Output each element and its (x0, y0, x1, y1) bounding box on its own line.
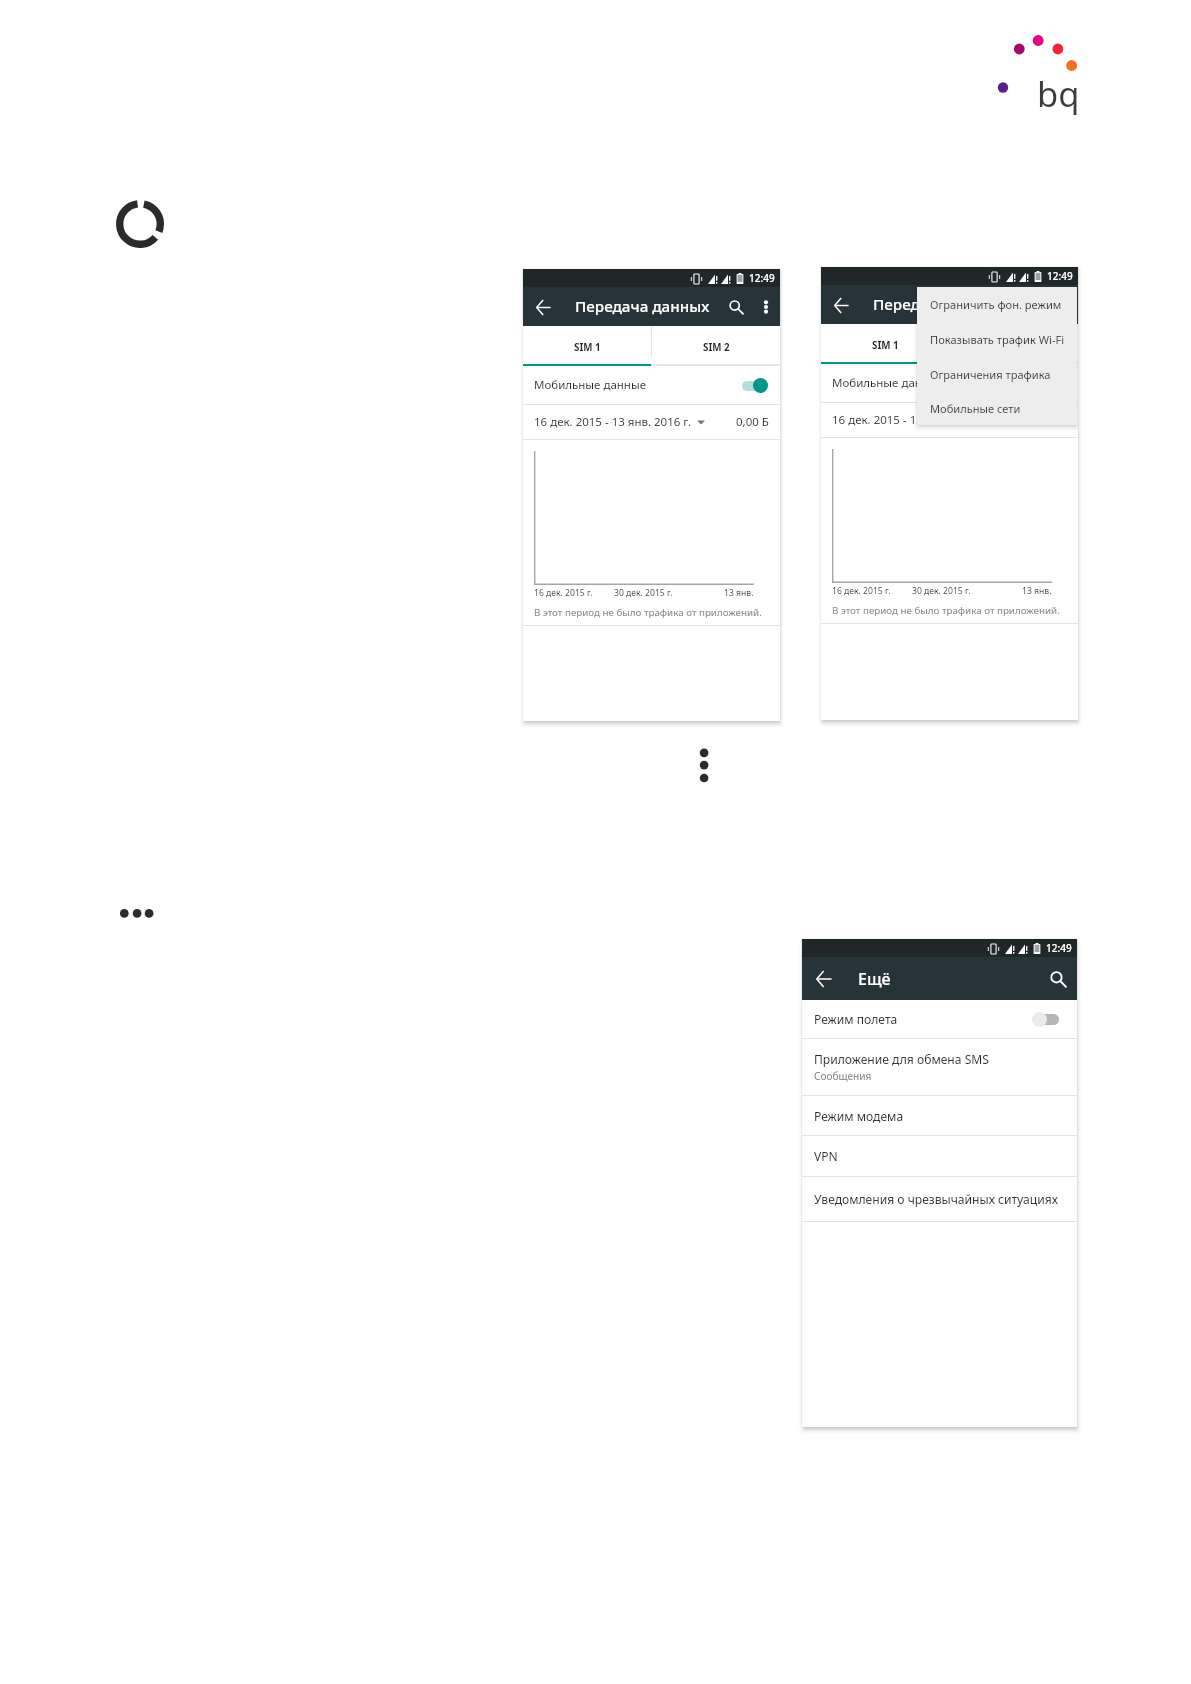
staticText: Уведомления о чрезвычайных ситуациях (814, 1191, 1058, 1207)
staticText: 16 дек. 2015 г. (534, 587, 593, 599)
button[interactable]: Back (810, 965, 838, 993)
staticText: SIM 2 (703, 341, 730, 354)
button[interactable]: Показывать трафик Wi-Fi (917, 322, 1077, 357)
staticText: 16 дек. 2015 - 13 янв. 2016 г. (832, 412, 989, 428)
staticText: 16 дек. 2015 г. (832, 585, 891, 597)
staticText: bq (1037, 70, 1080, 117)
staticText: Ещё (858, 968, 891, 990)
staticText: 0,00 Б (1034, 412, 1067, 428)
staticText: Режим полета (814, 1011, 898, 1027)
button[interactable]: Мобильные данные (821, 364, 1078, 402)
staticText: 12:49 (749, 271, 775, 285)
button[interactable]: Search (1044, 965, 1072, 993)
button[interactable]: Search (723, 294, 749, 320)
button[interactable]: Мобильные данные (523, 366, 780, 404)
button[interactable]: Мобильные сети (917, 392, 1077, 425)
staticText: SIM 1 (574, 341, 601, 354)
staticText: Сообщения (814, 1069, 872, 1083)
staticText: Мобильные сети (930, 401, 1021, 416)
button[interactable]: SIM 1 (821, 324, 949, 362)
staticText: Режим модема (814, 1108, 904, 1124)
staticText: SIM 2 (1001, 339, 1028, 352)
button[interactable]: Режим полета (802, 1000, 1077, 1038)
button[interactable]: Режим модема (802, 1096, 1077, 1135)
staticText: 12:49 (1047, 269, 1073, 283)
staticText: VPN (814, 1148, 838, 1164)
button[interactable]: SIM 2 (950, 324, 1078, 362)
staticText: В этот период не было трафика от приложе… (832, 604, 1060, 617)
staticText: Передача данных (575, 296, 710, 317)
staticText: 13 янв. (724, 587, 754, 599)
button[interactable]: More options (753, 294, 779, 320)
button[interactable]: SIM 2 (652, 326, 780, 364)
button[interactable]: Search (1021, 292, 1047, 318)
staticText: Приложение для обмена SMS (814, 1051, 989, 1067)
staticText: Мобильные данные (832, 375, 944, 391)
button[interactable]: Уведомления о чрезвычайных ситуациях (802, 1177, 1077, 1221)
staticText: 30 дек. 2015 г. (614, 587, 673, 599)
staticText: Ограничить фон. режим (930, 297, 1062, 312)
staticText: 30 дек. 2015 г. (912, 585, 971, 597)
button[interactable]: 16 дек. 2015 - 13 янв. 2016 г. (821, 403, 1078, 437)
staticText: Передача данных (873, 294, 1008, 315)
button[interactable]: Back (530, 294, 556, 320)
staticText: Ограничения трафика (930, 367, 1051, 382)
button[interactable]: VPN (802, 1136, 1077, 1176)
button[interactable]: SIM 1 (523, 326, 651, 364)
button[interactable]: Ограничения трафика (917, 357, 1077, 392)
staticText: SIM 1 (872, 339, 899, 352)
button[interactable]: 16 дек. 2015 - 13 янв. 2016 г. (523, 405, 780, 439)
button[interactable]: Приложение для обмена SMS (802, 1039, 1077, 1095)
staticText: В этот период не было трафика от приложе… (534, 606, 762, 619)
staticText: Мобильные данные (534, 377, 646, 393)
button[interactable]: Back (828, 292, 854, 318)
staticText: Показывать трафик Wi-Fi (930, 332, 1065, 347)
button[interactable]: More options (1051, 292, 1077, 318)
staticText: 13 янв. (1022, 585, 1052, 597)
button[interactable]: Ограничить фон. режим (917, 287, 1077, 322)
staticText: 0,00 Б (736, 414, 769, 430)
staticText: 12:49 (1046, 941, 1072, 955)
staticText: 16 дек. 2015 - 13 янв. 2016 г. (534, 414, 691, 430)
